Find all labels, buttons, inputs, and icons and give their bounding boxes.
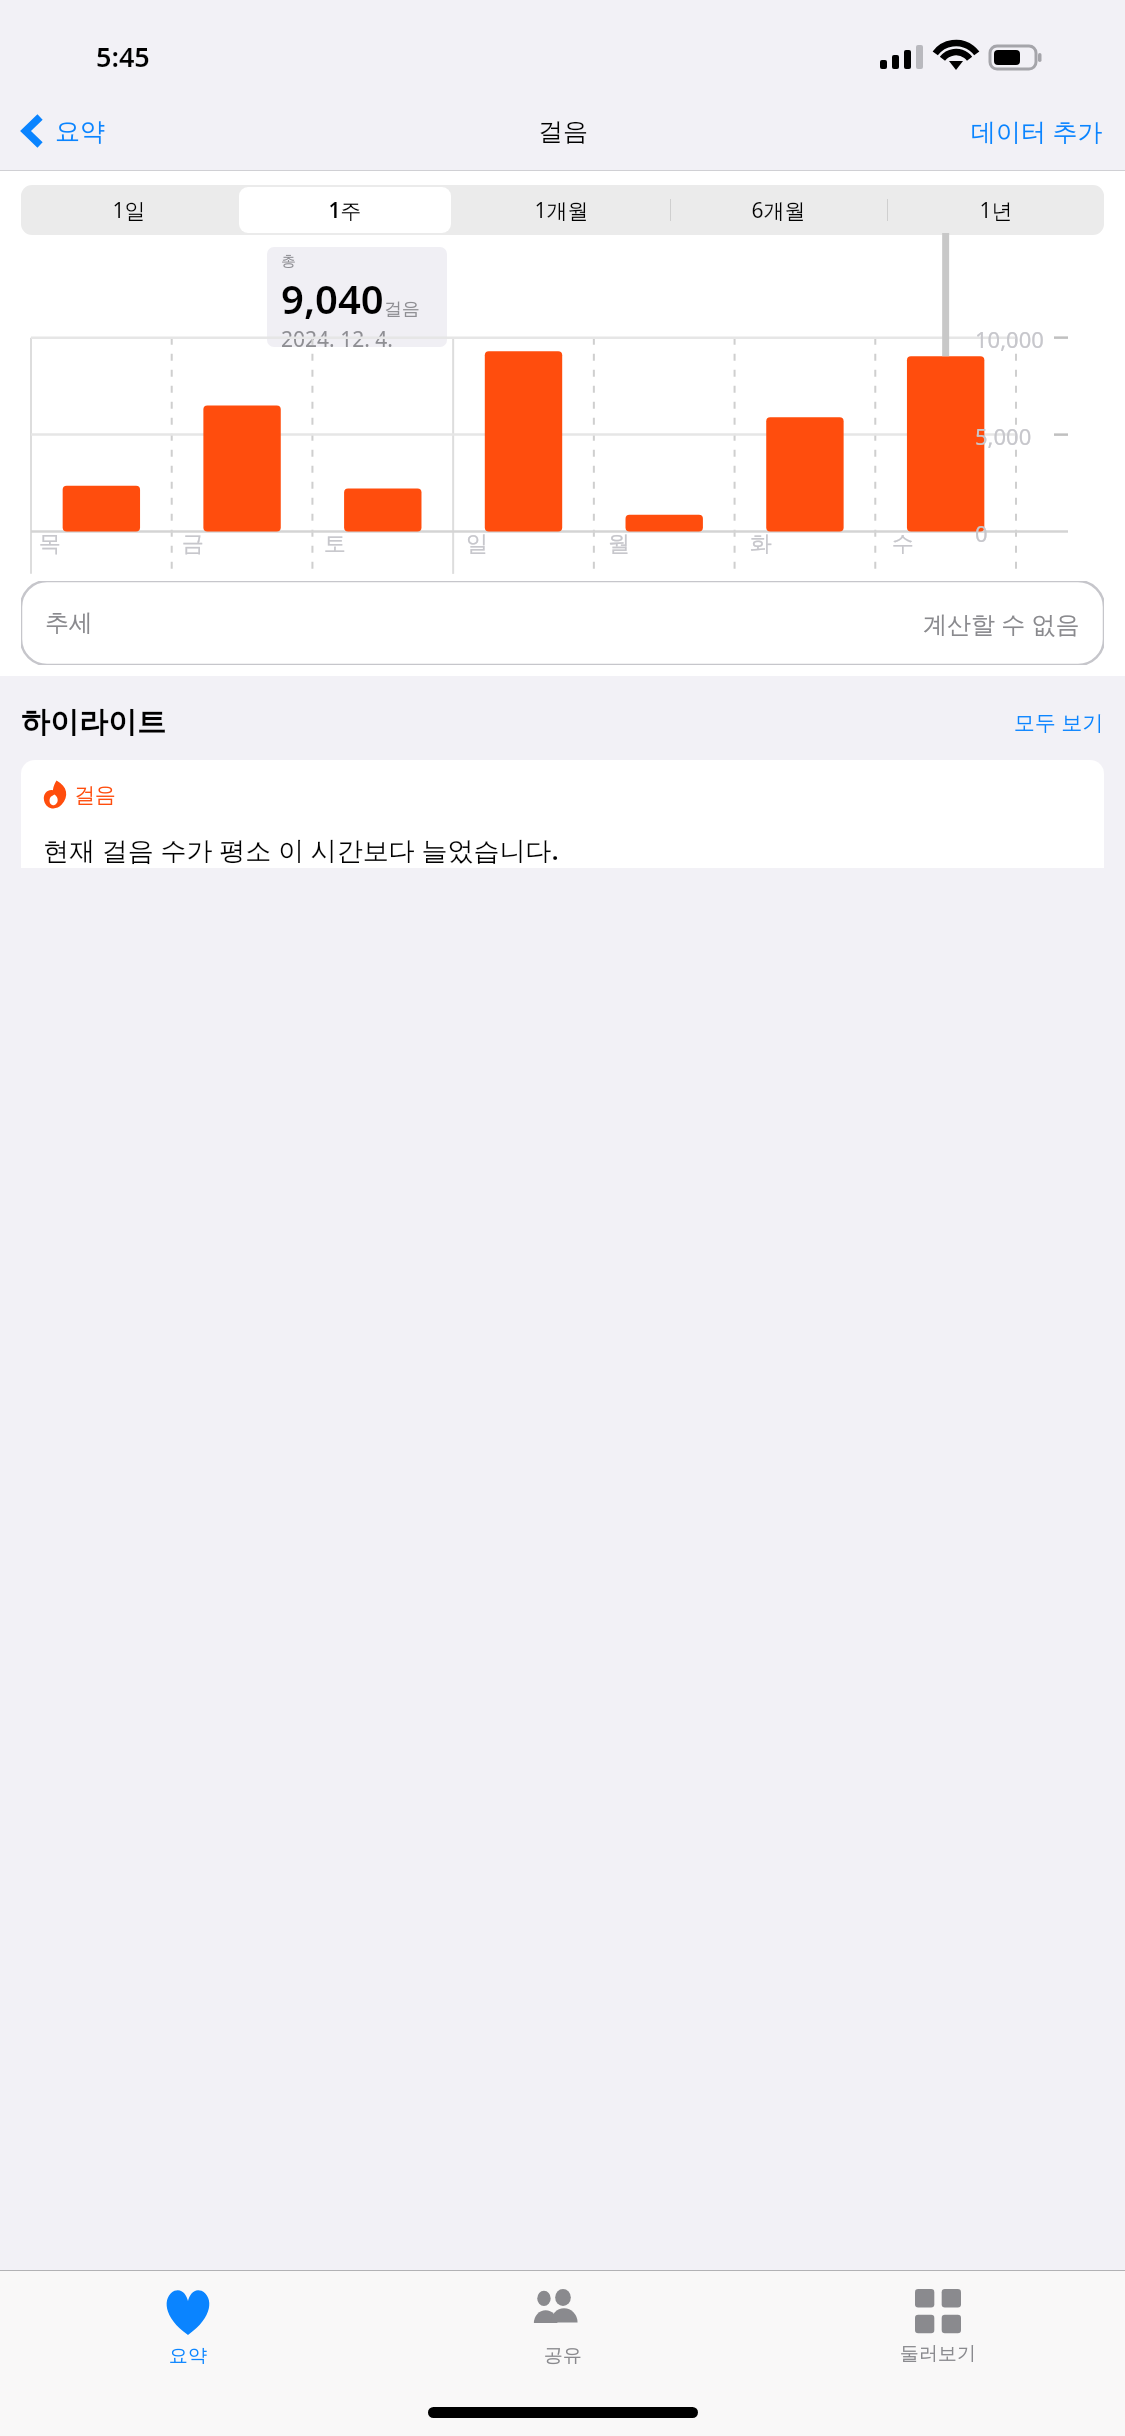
button[interactable]: 1개월 — [453, 185, 670, 235]
button[interactable]: 1일 — [21, 185, 237, 235]
staticText: 9,040 — [281, 271, 384, 325]
staticText: 현재 걸음 수가 평소 이 시간보다 늘었습니다. — [43, 832, 559, 868]
staticText: 화 — [750, 530, 772, 558]
staticText: 5,000 — [975, 421, 1032, 451]
button[interactable]: 추세 — [21, 581, 1104, 665]
staticText: 요약 — [55, 116, 105, 147]
button[interactable]: 요약 — [22, 114, 113, 148]
staticText: 1일 — [112, 196, 146, 225]
button[interactable]: 요약 — [0, 2271, 375, 2368]
button[interactable]: 1년 — [887, 185, 1104, 235]
staticText: 걸음 — [538, 116, 588, 147]
button[interactable]: 1주 — [237, 185, 453, 235]
staticText: 계산할 수 없음 — [923, 607, 1080, 640]
staticText: 일 — [466, 530, 488, 558]
staticText: 1주 — [328, 196, 362, 225]
button[interactable]: 6개월 — [670, 185, 887, 235]
staticText: 둘러보기 — [900, 2342, 976, 2366]
staticText: 2024. 12. 4. — [281, 325, 393, 347]
staticText: 10,000 — [975, 324, 1044, 354]
staticText: 총 — [281, 252, 296, 271]
staticText: 1년 — [979, 196, 1013, 225]
button[interactable]: 공유 — [375, 2271, 750, 2368]
staticText: 수 — [892, 530, 914, 558]
staticText: 데이터 추가 — [971, 114, 1103, 148]
button[interactable]: 모두 보기 — [1014, 708, 1104, 737]
staticText: 금 — [182, 530, 204, 558]
button[interactable]: 걸음 — [21, 760, 1104, 868]
staticText: 토 — [324, 530, 346, 558]
staticText: 모두 보기 — [1014, 708, 1104, 737]
staticText: 월 — [608, 530, 630, 558]
other: 요약 — [162, 2289, 214, 2335]
button[interactable]: 데이터 추가 — [971, 114, 1103, 148]
staticText: 6개월 — [751, 196, 806, 225]
staticText: 5:45 — [96, 38, 150, 75]
staticText: 걸음 — [74, 782, 116, 808]
staticText: 요약 — [169, 2344, 207, 2368]
staticText: 추세 — [45, 608, 93, 638]
other: 공유 — [535, 2289, 591, 2335]
staticText: 걸음 — [384, 298, 420, 321]
staticText: 목 — [39, 530, 61, 558]
staticText: 1개월 — [534, 196, 589, 225]
button[interactable]: 둘러보기 — [750, 2271, 1125, 2366]
staticText: 공유 — [544, 2344, 582, 2368]
staticText: 하이라이트 — [21, 704, 166, 741]
staticText: 0 — [975, 518, 988, 548]
other: 둘러보기 — [915, 2289, 961, 2333]
